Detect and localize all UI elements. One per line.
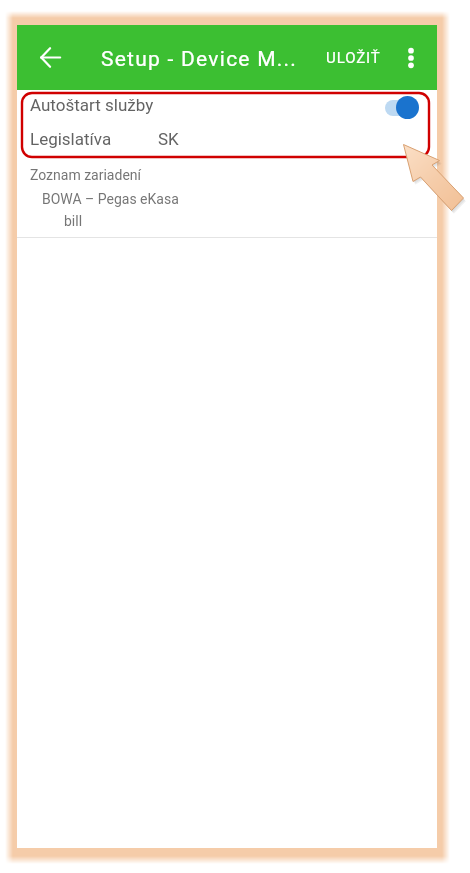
- button[interactable]: More options: [391, 38, 431, 78]
- staticText: SK: [158, 129, 179, 149]
- staticText: BOWA – Pegas eKasa: [42, 191, 179, 207]
- staticText: Zoznam zariadení: [30, 167, 142, 183]
- button[interactable]: Back: [30, 37, 70, 77]
- staticText: ULOŽIŤ: [326, 49, 381, 67]
- button[interactable]: Legislatíva: [17, 121, 437, 156]
- staticText: Autoštart služby: [30, 95, 154, 115]
- staticText: Legislatíva: [30, 129, 112, 149]
- button[interactable]: ULOŽIŤ: [326, 49, 381, 67]
- button[interactable]: Zoznam zariadení: [17, 163, 437, 186]
- staticText: bill: [64, 213, 83, 229]
- button[interactable]: Autoštart služby toggle: [385, 96, 419, 119]
- staticText: Setup - Device M...: [101, 47, 298, 72]
- button[interactable]: BOWA – Pegas eKasa: [17, 187, 437, 210]
- button[interactable]: bill: [17, 209, 437, 232]
- button[interactable]: Autoštart služby: [17, 87, 437, 122]
